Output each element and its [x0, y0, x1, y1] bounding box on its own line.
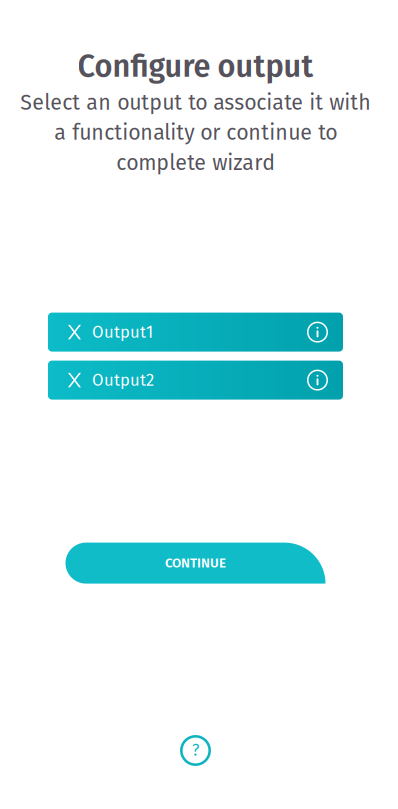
- staticText: ?: [192, 741, 199, 760]
- staticText: Select an output to associate it with a …: [20, 90, 371, 176]
- button[interactable]: CONTINUE: [65, 543, 325, 584]
- staticText: CONTINUE: [165, 555, 226, 571]
- staticText: Output2: [92, 370, 154, 390]
- button[interactable]: Output1: [48, 313, 343, 352]
- button[interactable]: Output2: [48, 361, 343, 400]
- staticText: Output1: [92, 322, 153, 342]
- staticText: Configure output: [77, 48, 313, 85]
- button[interactable]: Help: [180, 735, 211, 766]
